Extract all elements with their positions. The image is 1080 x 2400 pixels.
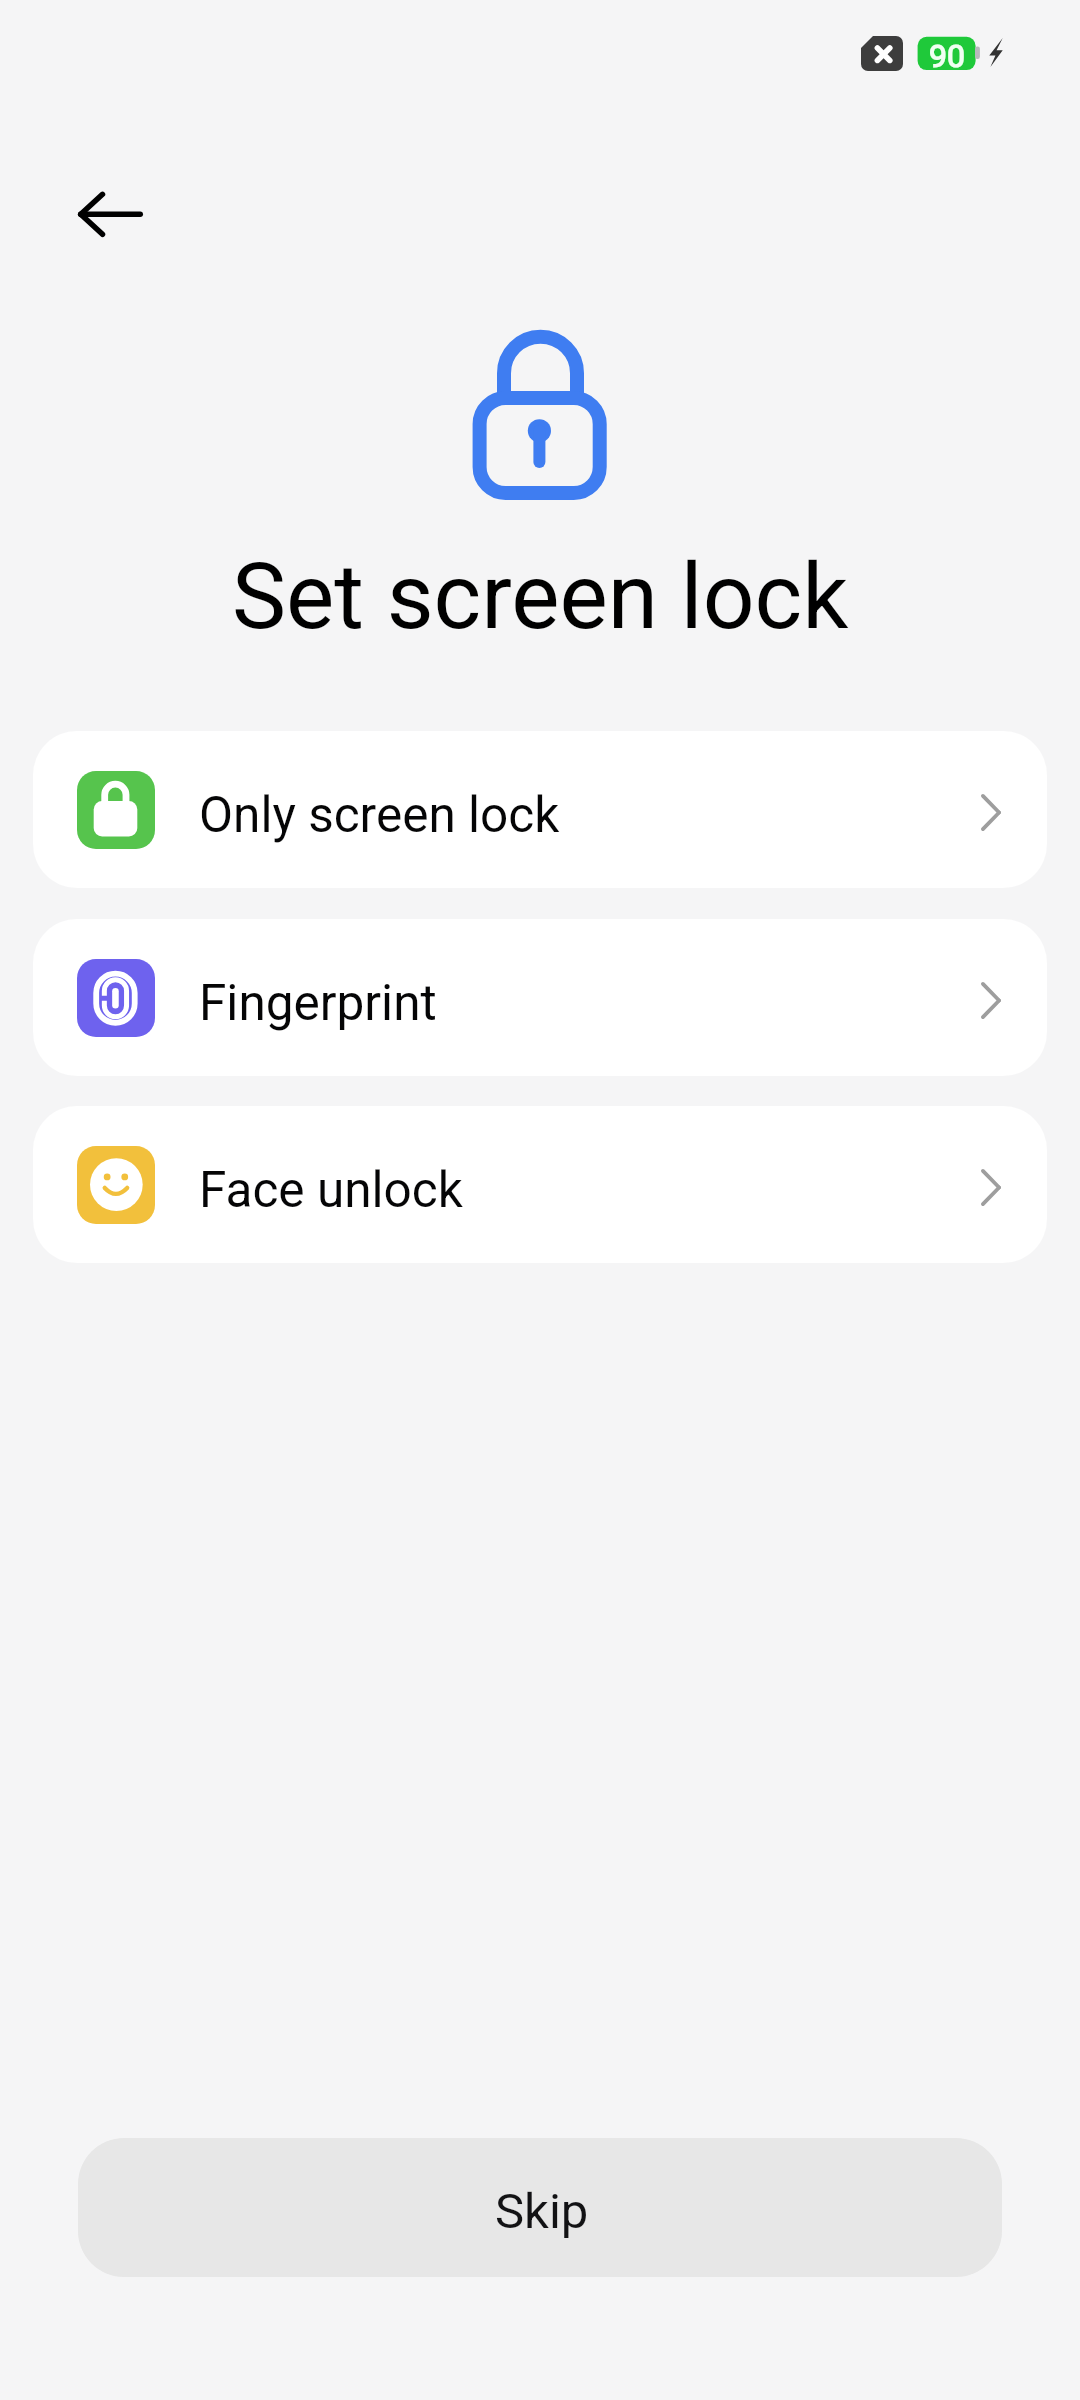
button[interactable]: Back <box>28 164 192 264</box>
button[interactable]: Face unlock <box>33 1106 1047 1263</box>
staticText: Only screen lock <box>199 786 560 844</box>
other: No SIM card <box>861 36 903 71</box>
staticText: Skip <box>495 2183 589 2240</box>
staticText: 90 <box>929 37 965 72</box>
other: Charging <box>989 38 1003 67</box>
button[interactable]: Skip <box>78 2138 1002 2277</box>
button[interactable]: Fingerprint <box>33 919 1047 1076</box>
staticText: Set screen lock <box>232 544 849 651</box>
button[interactable]: Only screen lock <box>33 731 1047 888</box>
staticText: Face unlock <box>199 1161 463 1219</box>
staticText: Fingerprint <box>199 974 437 1032</box>
